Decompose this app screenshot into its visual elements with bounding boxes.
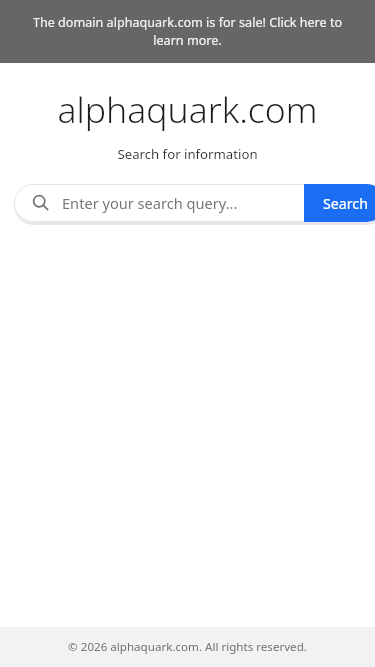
button[interactable]: Search [304, 184, 375, 222]
button[interactable]: The domain alphaquark.com is for sale! C… [0, 0, 375, 63]
staticText: Search [323, 194, 368, 213]
button[interactable]: Enter your search query... [62, 184, 304, 222]
staticText: Search for information [0, 145, 375, 163]
staticText: Enter your search query... [62, 193, 238, 213]
staticText: © 2026 alphaquark.com. All rights reserv… [0, 639, 375, 655]
other: Search icon [32, 194, 50, 212]
staticText: The domain alphaquark.com is for sale! C… [22, 14, 353, 49]
staticText: alphaquark.com [0, 85, 375, 133]
